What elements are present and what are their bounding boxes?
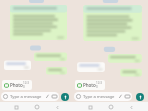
button[interactable]: Photo: [2, 80, 32, 90]
other: Camera: [52, 94, 57, 99]
other: Attach: [45, 94, 50, 99]
staticText: Type a message: [10, 94, 42, 100]
staticText: 12:30: [23, 81, 30, 89]
button[interactable]: Type a message: [74, 92, 132, 101]
button[interactable]: Back: [53, 103, 61, 111]
other: Camera: [125, 94, 130, 99]
button[interactable]: Photo: [75, 80, 105, 90]
staticText: Photo: [10, 82, 23, 88]
button[interactable]: Type a message: [1, 92, 59, 101]
button[interactable]: Recent apps: [12, 103, 20, 111]
staticText: 12:30: [96, 81, 103, 89]
button[interactable]: Home: [33, 103, 41, 111]
button[interactable]: Home: [107, 103, 115, 111]
other: Attach: [118, 94, 123, 99]
button[interactable]: Back: [127, 103, 135, 111]
staticText: Photo: [83, 82, 96, 88]
staticText: Type a message: [83, 94, 115, 100]
button[interactable]: Recent apps: [86, 103, 94, 111]
button[interactable]: Record voice message: [136, 93, 144, 101]
button[interactable]: Record voice message: [61, 93, 69, 101]
